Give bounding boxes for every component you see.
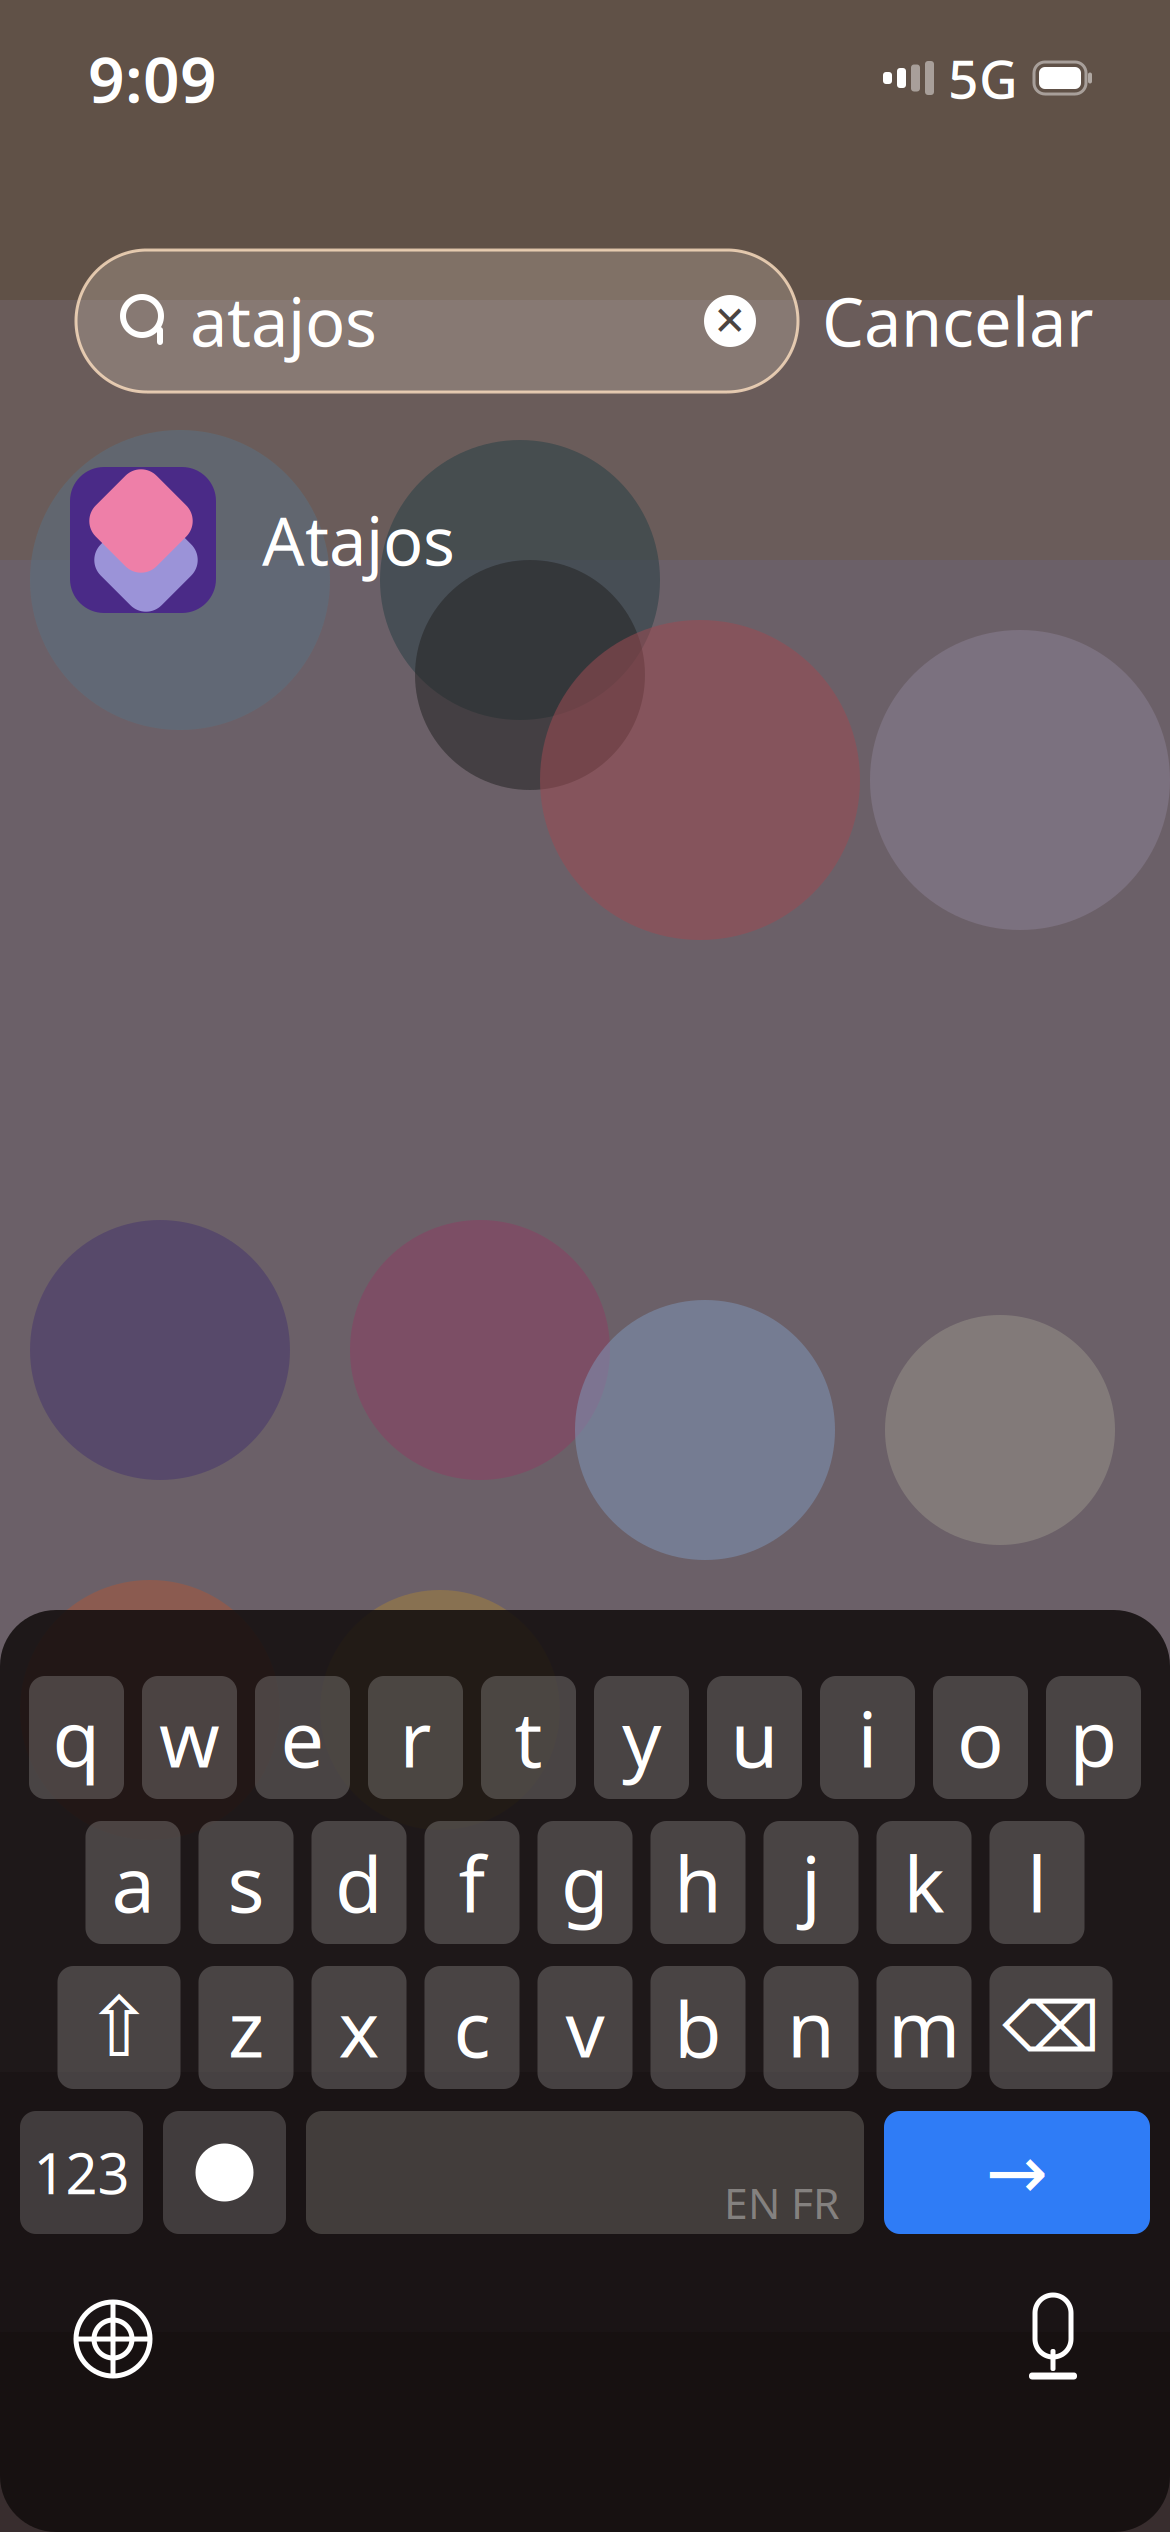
staticText: o: [957, 1686, 1004, 1789]
button[interactable]: atajos: [76, 250, 798, 392]
button[interactable]: Emoji: [163, 2111, 286, 2234]
button[interactable]: Espacio: [306, 2111, 864, 2234]
button[interactable]: q: [29, 1676, 124, 1799]
button[interactable]: a: [85, 1821, 180, 1944]
button[interactable]: l: [989, 1821, 1084, 1944]
button[interactable]: Atajos: [0, 452, 1170, 628]
button[interactable]: k: [876, 1821, 971, 1944]
staticText: b: [674, 1976, 722, 2079]
button[interactable]: y: [594, 1676, 689, 1799]
staticText: r: [399, 1686, 431, 1789]
staticText: f: [458, 1831, 485, 1934]
button[interactable]: Cambiar idioma: [58, 2284, 168, 2394]
staticText: d: [335, 1831, 383, 1934]
staticText: y: [622, 1686, 661, 1789]
button[interactable]: d: [311, 1821, 406, 1944]
button[interactable]: b: [650, 1966, 745, 2089]
button[interactable]: e: [255, 1676, 350, 1799]
button[interactable]: g: [537, 1821, 632, 1944]
staticText: c: [453, 1976, 490, 2079]
staticText: q: [52, 1686, 100, 1789]
button[interactable]: o: [933, 1676, 1028, 1799]
staticText: Atajos: [262, 496, 455, 584]
button[interactable]: j: [763, 1821, 858, 1944]
button[interactable]: n: [763, 1966, 858, 2089]
staticText: →: [985, 2130, 1048, 2215]
staticText: p: [1069, 1686, 1117, 1789]
button[interactable]: Buscar: [884, 2111, 1150, 2234]
staticText: h: [674, 1831, 722, 1934]
staticText: Cancelar: [822, 277, 1094, 365]
button[interactable]: v: [537, 1966, 632, 2089]
button[interactable]: Mayúsculas: [57, 1966, 180, 2089]
staticText: a: [111, 1831, 154, 1934]
staticText: x: [338, 1976, 379, 2079]
button[interactable]: p: [1046, 1676, 1141, 1799]
staticText: t: [514, 1686, 542, 1789]
staticText: EN FR: [724, 2174, 840, 2231]
button[interactable]: u: [707, 1676, 802, 1799]
staticText: ⌫: [1002, 1988, 1100, 2067]
staticText: z: [228, 1976, 264, 2079]
button[interactable]: Borrar texto: [704, 295, 756, 347]
staticText: 123: [33, 2135, 129, 2210]
button[interactable]: Borrar: [989, 1966, 1112, 2089]
staticText: 5G: [948, 43, 1018, 113]
staticText: ✕: [713, 298, 747, 344]
button[interactable]: Dictado: [998, 2284, 1108, 2394]
staticText: l: [1027, 1831, 1047, 1934]
button[interactable]: w: [142, 1676, 237, 1799]
staticText: j: [801, 1831, 821, 1934]
button[interactable]: 123: [20, 2111, 143, 2234]
button[interactable]: s: [198, 1821, 293, 1944]
button[interactable]: x: [311, 1966, 406, 2089]
button[interactable]: f: [424, 1821, 519, 1944]
staticText: atajos: [190, 277, 377, 365]
button[interactable]: Cancelar: [798, 250, 1118, 392]
button[interactable]: r: [368, 1676, 463, 1799]
staticText: n: [787, 1976, 835, 2079]
staticText: g: [561, 1831, 609, 1934]
button[interactable]: c: [424, 1966, 519, 2089]
staticText: w: [159, 1686, 220, 1789]
staticText: s: [227, 1831, 264, 1934]
staticText: e: [280, 1686, 324, 1789]
staticText: ⇧: [84, 1981, 153, 2074]
staticText: i: [857, 1686, 877, 1789]
staticText: 9:09: [88, 35, 217, 120]
staticText: k: [903, 1831, 944, 1934]
button[interactable]: h: [650, 1821, 745, 1944]
staticText: u: [730, 1686, 778, 1789]
button[interactable]: i: [820, 1676, 915, 1799]
button[interactable]: z: [198, 1966, 293, 2089]
button[interactable]: t: [481, 1676, 576, 1799]
staticText: v: [565, 1976, 604, 2079]
button[interactable]: m: [876, 1966, 971, 2089]
staticText: m: [888, 1976, 960, 2079]
